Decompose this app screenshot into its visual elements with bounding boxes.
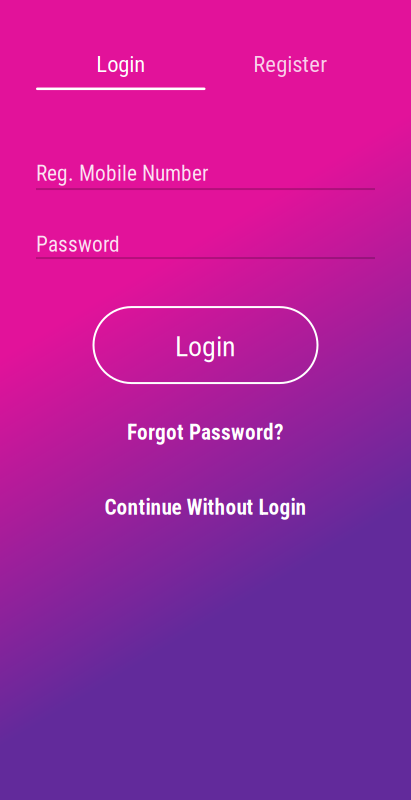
staticText: Register bbox=[253, 51, 327, 78]
staticText: Continue Without Login bbox=[104, 495, 306, 520]
button[interactable]: Password bbox=[36, 230, 375, 259]
staticText: Password bbox=[36, 232, 120, 257]
button[interactable]: Forgot Password? bbox=[36, 420, 375, 445]
button[interactable]: Continue Without Login bbox=[36, 495, 375, 520]
staticText: Login bbox=[175, 330, 236, 363]
button[interactable]: Login bbox=[36, 51, 205, 90]
button[interactable]: Login bbox=[93, 307, 317, 383]
staticText: Reg. Mobile Number bbox=[36, 161, 209, 186]
button[interactable]: Reg. Mobile Number bbox=[36, 161, 375, 190]
button[interactable]: Register bbox=[205, 51, 375, 90]
staticText: Login bbox=[96, 51, 145, 78]
staticText: Forgot Password? bbox=[127, 420, 284, 445]
